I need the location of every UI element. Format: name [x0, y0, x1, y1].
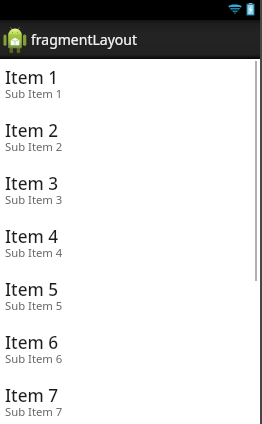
- button[interactable]: Item 7: [0, 377, 262, 424]
- button[interactable]: Item 3: [0, 165, 262, 218]
- staticText: Item 1: [5, 66, 59, 89]
- button[interactable]: Item 2: [0, 112, 262, 165]
- staticText: Item 4: [5, 225, 59, 248]
- staticText: Sub Item 5: [5, 298, 63, 313]
- button[interactable]: Item 5: [0, 271, 262, 324]
- staticText: Sub Item 6: [5, 351, 63, 366]
- staticText: Item 6: [5, 331, 59, 354]
- staticText: Sub Item 4: [5, 245, 63, 260]
- staticText: Item 3: [5, 172, 59, 195]
- button[interactable]: Item 4: [0, 218, 262, 271]
- staticText: Item 5: [5, 278, 59, 301]
- staticText: Sub Item 2: [5, 139, 63, 154]
- staticText: Sub Item 1: [5, 86, 63, 101]
- staticText: Sub Item 3: [5, 192, 63, 207]
- staticText: Sub Item 7: [5, 404, 63, 419]
- staticText: fragmentLayout: [31, 30, 137, 49]
- button[interactable]: Item 6: [0, 324, 262, 377]
- button[interactable]: Item 1: [0, 59, 262, 112]
- other: App icon: [3, 27, 27, 53]
- staticText: Item 2: [5, 119, 59, 142]
- staticText: Item 7: [5, 384, 59, 407]
- button[interactable]: App icon: [0, 20, 262, 59]
